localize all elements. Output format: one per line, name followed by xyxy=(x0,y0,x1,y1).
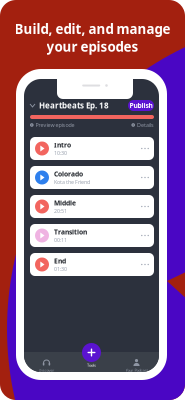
staticText: Discover xyxy=(38,367,54,373)
staticText: Transition xyxy=(54,227,87,236)
button[interactable]: Transition xyxy=(30,224,154,247)
staticText: your episodes xyxy=(46,38,138,55)
staticText: 10:30 xyxy=(54,149,67,156)
staticText: Build, edit, and manage xyxy=(14,20,170,38)
button[interactable]: Tools xyxy=(69,352,114,377)
staticText: 00:11 xyxy=(54,236,67,243)
staticText: Tools xyxy=(87,362,96,368)
staticText: Colorado xyxy=(54,169,83,178)
staticText: 20:51 xyxy=(54,207,67,214)
staticText: Kota the Friend xyxy=(54,178,90,185)
staticText: Middle xyxy=(54,198,76,207)
staticText: Preview episode xyxy=(36,121,75,129)
staticText: 01:30 xyxy=(54,265,67,272)
button[interactable]: Publish xyxy=(128,100,154,111)
button[interactable]: Discover xyxy=(24,356,69,373)
staticText: End xyxy=(54,256,66,265)
staticText: Your Podcast xyxy=(125,367,147,373)
staticText: Publish xyxy=(129,101,152,110)
button[interactable]: Your Podcast xyxy=(114,356,159,373)
button[interactable]: End xyxy=(30,253,154,276)
button[interactable]: Middle xyxy=(30,195,154,218)
staticText: Heartbeats Ep. 18 xyxy=(39,100,109,111)
staticText: Intro xyxy=(54,140,71,149)
button[interactable]: Intro xyxy=(30,137,154,160)
staticText: Details xyxy=(137,121,154,129)
button[interactable]: Colorado xyxy=(30,166,154,189)
